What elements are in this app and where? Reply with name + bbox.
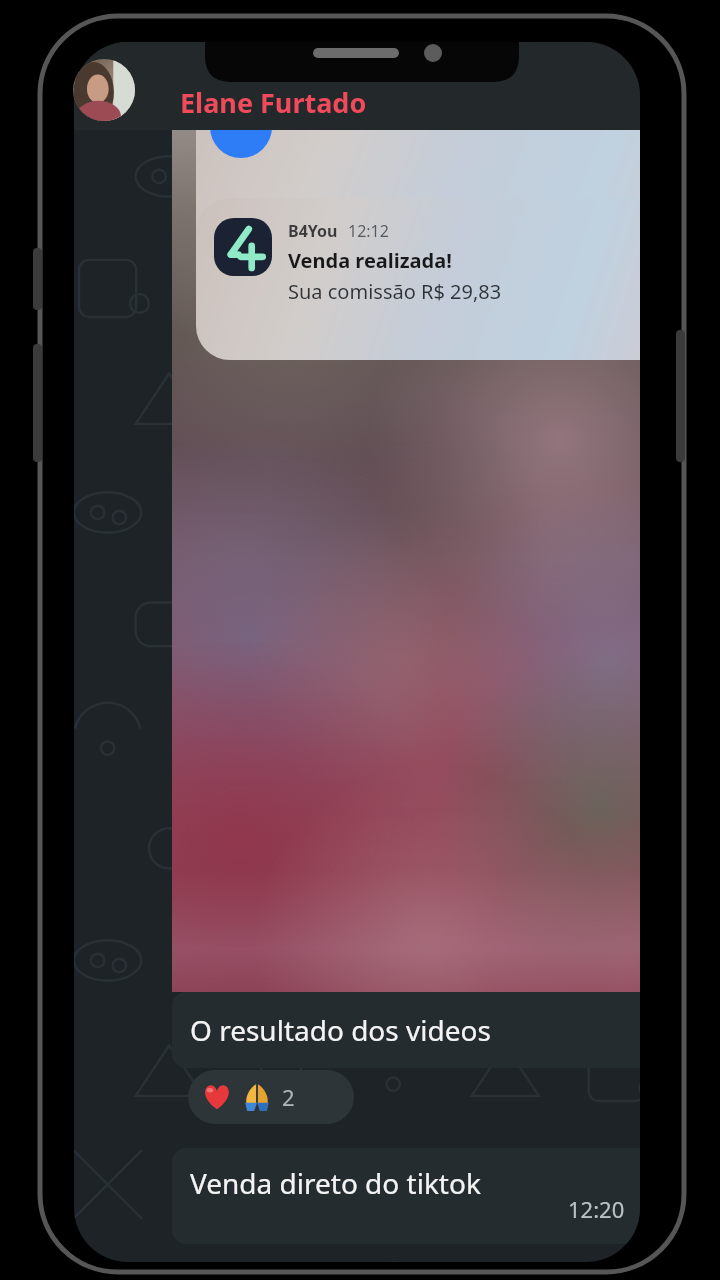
staticText: 2: [282, 1082, 295, 1112]
staticText: Elane Furtado: [180, 84, 367, 121]
staticText: Venda direto do tiktok: [190, 1164, 481, 1202]
staticText: B4You: [288, 220, 338, 242]
staticText: Venda realizada!: [288, 247, 452, 274]
staticText: 12:20: [568, 1194, 625, 1224]
staticText: Sua comissão R$ 29,83: [288, 278, 502, 305]
staticText: O resultado dos videos: [190, 1011, 491, 1049]
button[interactable]: Profile photo: [73, 59, 135, 121]
button[interactable]: Venda direto do tiktok: [172, 1148, 642, 1244]
button[interactable]: Contact Elane Furtado: [180, 78, 430, 126]
button[interactable]: 2: [188, 1070, 354, 1124]
button[interactable]: O resultado dos videos: [172, 992, 642, 1068]
button[interactable]: B4You: [196, 198, 642, 360]
staticText: 12:12: [348, 220, 389, 242]
